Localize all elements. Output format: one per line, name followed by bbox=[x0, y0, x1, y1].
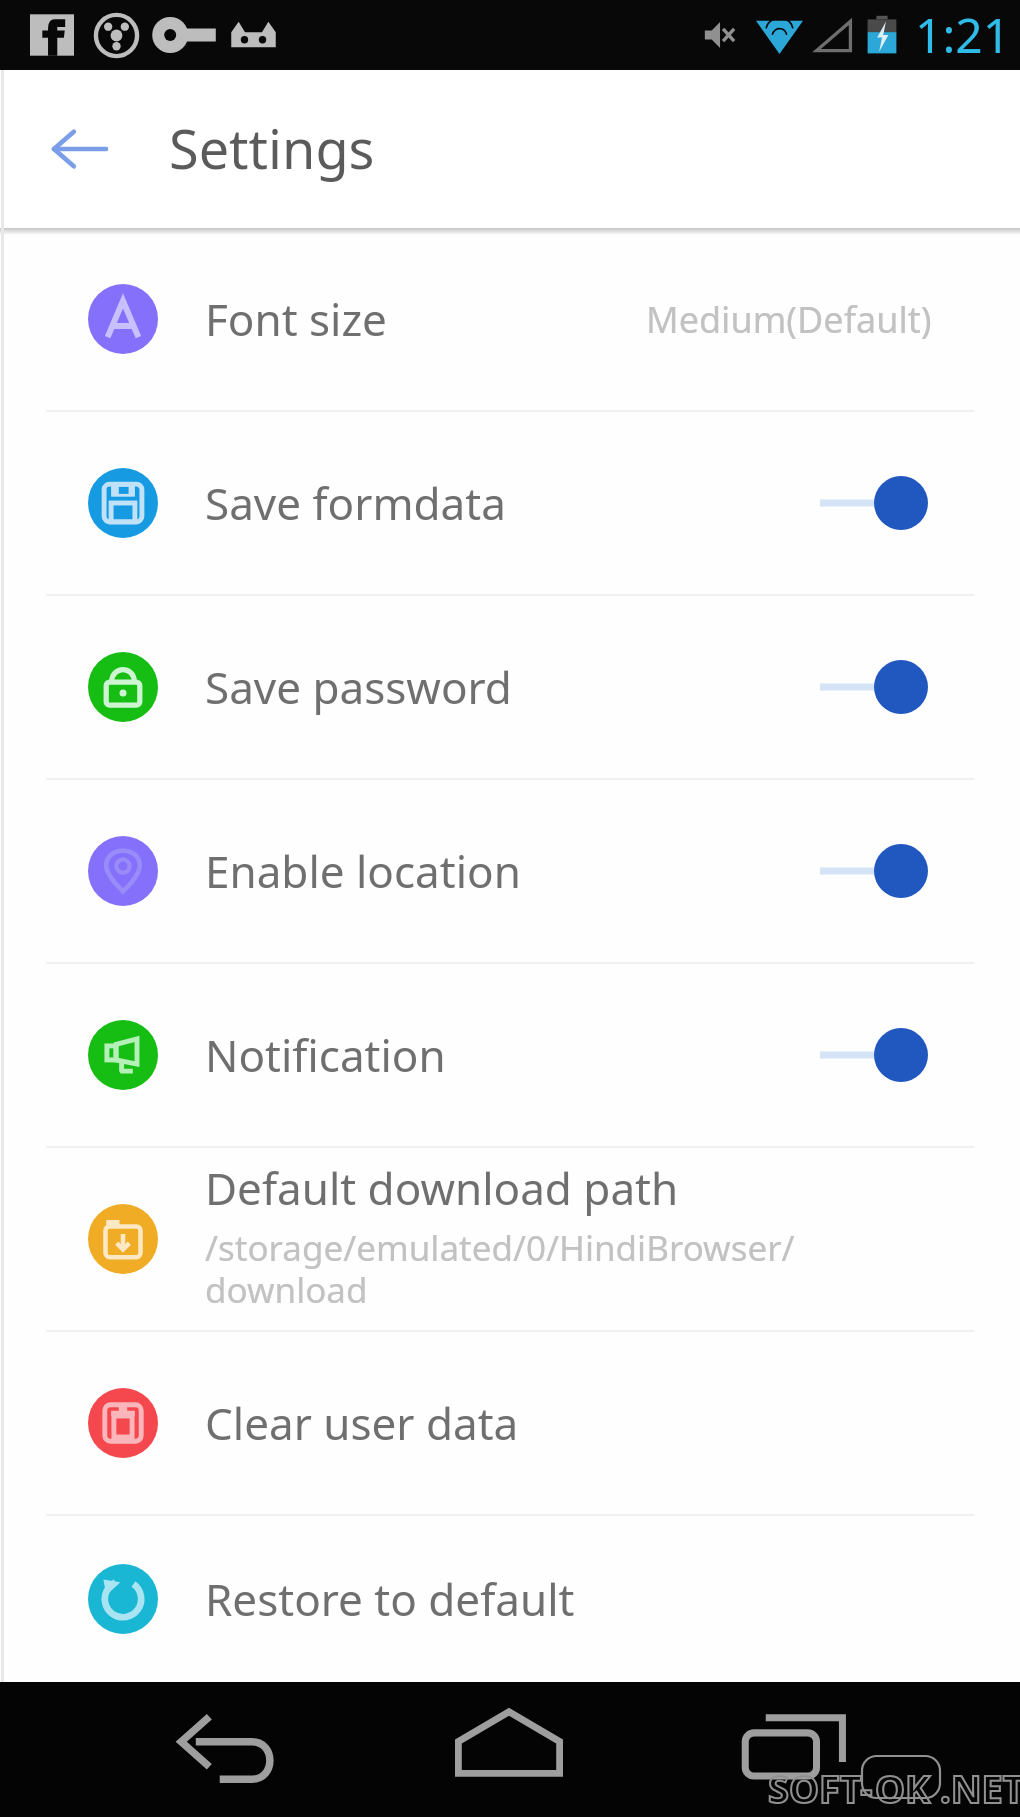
button[interactable]: Default download path bbox=[0, 1148, 1020, 1330]
staticText: Font size bbox=[205, 289, 387, 349]
staticText: .NET bbox=[940, 1762, 1020, 1814]
staticText: /storage/emulated/0/HindiBrowser/ downlo… bbox=[205, 1224, 795, 1313]
button[interactable]: Enable location bbox=[0, 780, 1020, 962]
button[interactable]: Font size bbox=[0, 228, 1020, 410]
staticText: Restore to default bbox=[205, 1569, 575, 1629]
button[interactable]: Restore to default bbox=[0, 1516, 1020, 1682]
button[interactable]: Save password bbox=[0, 596, 1020, 778]
button[interactable]: Toggle Enable location bbox=[820, 844, 928, 898]
button[interactable]: Save formdata bbox=[0, 412, 1020, 594]
button[interactable]: Notification bbox=[0, 964, 1020, 1146]
staticText: Notification bbox=[205, 1025, 446, 1085]
staticText: Clear user data bbox=[205, 1393, 519, 1453]
button[interactable]: Toggle Save password bbox=[820, 660, 928, 714]
button[interactable]: Back bbox=[162, 1683, 292, 1813]
staticText: Save formdata bbox=[205, 473, 506, 533]
button[interactable]: Toggle Save formdata bbox=[820, 476, 928, 530]
staticText: Settings bbox=[169, 111, 375, 185]
staticText: OK bbox=[875, 1762, 931, 1814]
button[interactable]: Back bbox=[30, 99, 130, 199]
staticText: SOFT- bbox=[768, 1762, 873, 1814]
staticText: 1:21 bbox=[915, 2, 1011, 67]
button[interactable]: Home bbox=[444, 1682, 574, 1812]
staticText: Medium(Default) bbox=[646, 295, 932, 344]
staticText: Enable location bbox=[205, 841, 521, 901]
staticText: Default download path bbox=[205, 1158, 679, 1218]
button[interactable]: Toggle Notification bbox=[820, 1028, 928, 1082]
staticText: Save password bbox=[205, 657, 512, 717]
button[interactable]: Clear user data bbox=[0, 1332, 1020, 1514]
button[interactable]: Recent apps bbox=[731, 1683, 861, 1813]
